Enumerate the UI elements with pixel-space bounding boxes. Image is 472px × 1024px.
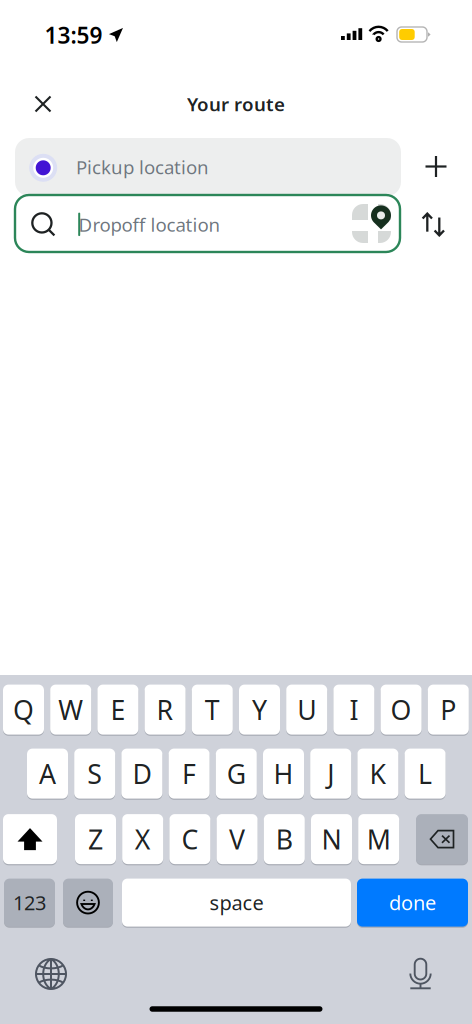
button[interactable]: Dictate [397,950,443,996]
staticText: N [321,821,341,857]
button[interactable]: X [122,813,163,865]
button[interactable]: K [357,748,398,799]
staticText: Z [88,821,103,857]
button[interactable]: D [121,748,162,799]
staticText: 13:59 [44,20,102,50]
staticText: G [227,756,246,791]
staticText: S [87,756,102,791]
button[interactable]: P [428,684,469,735]
button[interactable]: U [286,684,327,735]
button[interactable]: space [122,878,351,927]
staticText: Pickup location [76,154,209,179]
button[interactable]: Dropoff location [15,195,400,252]
button[interactable]: Delete [416,813,468,865]
staticText: Your route [187,92,285,116]
button[interactable]: L [405,748,446,799]
button[interactable]: A [27,748,68,799]
button[interactable]: H [263,748,304,799]
button[interactable]: T [192,684,233,735]
button[interactable]: Swap pickup and dropoff [407,198,459,250]
button[interactable]: I [333,684,374,735]
button[interactable]: C [169,813,210,865]
button[interactable]: Shift [3,813,57,865]
button[interactable]: R [145,684,186,735]
staticText: E [110,692,125,727]
staticText: O [391,692,412,727]
staticText: Dropoff location [79,212,221,237]
button[interactable]: V [217,813,258,865]
staticText: F [182,756,196,791]
button[interactable]: 123 [4,878,55,927]
staticText: L [418,756,432,791]
button[interactable]: J [310,748,351,799]
staticText: B [276,821,293,857]
button[interactable]: Close [21,82,65,126]
button[interactable]: N [311,813,352,865]
button[interactable]: Y [239,684,280,735]
staticText: M [367,821,391,857]
staticText: T [205,692,220,727]
staticText: A [39,756,56,791]
staticText: J [327,756,334,791]
staticText: D [132,756,151,791]
staticText: I [349,692,358,727]
button[interactable]: done [357,878,468,927]
button[interactable]: Q [3,684,44,735]
staticText: K [369,756,386,791]
staticText: X [135,821,151,857]
button[interactable]: E [97,684,138,735]
staticText: W [58,692,83,727]
staticText: Y [252,692,267,727]
staticText: U [297,692,316,727]
button[interactable]: G [216,748,257,799]
staticText: space [209,889,263,916]
staticText: V [229,821,245,857]
button[interactable]: Change keyboard [28,951,74,997]
button[interactable]: O [381,684,422,735]
button[interactable]: Z [75,813,116,865]
staticText: R [157,692,174,727]
button[interactable]: F [169,748,210,799]
button[interactable]: M [358,813,399,865]
button[interactable]: S [74,748,115,799]
staticText: Q [13,692,34,727]
button[interactable]: Emoji [63,878,113,927]
staticText: H [273,756,293,791]
button[interactable]: Add stop [410,140,462,192]
staticText: P [440,692,456,727]
button[interactable]: W [50,684,91,735]
staticText: done [389,889,436,916]
staticText: C [181,821,198,857]
button[interactable]: B [264,813,305,865]
staticText: 123 [13,889,46,916]
